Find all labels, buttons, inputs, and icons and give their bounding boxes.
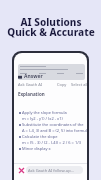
button[interactable]: Answer	[18, 73, 43, 80]
staticText: Copy	[57, 82, 67, 87]
button[interactable]: Ask Gauth AI follow-up...	[26, 166, 83, 174]
staticText: A = (-4, 3) and B = (2, 5) into formula	[22, 128, 87, 133]
staticText: AI Solutions Quick & Accurate	[7, 15, 95, 39]
staticText: Explanation	[18, 91, 45, 97]
staticText: Substitute the coordinates of the points	[22, 122, 87, 127]
staticText: m = (y2 - y1) / (x2 - x1)	[22, 116, 63, 121]
staticText: Ask Gauth AI follow-up...	[28, 168, 74, 173]
staticText: Ask Gauth AI	[18, 82, 43, 87]
button[interactable]: AI assist	[18, 167, 24, 173]
staticText: Select all	[71, 82, 87, 87]
staticText: Calculate the slope	[22, 134, 58, 139]
staticText: Answer	[24, 73, 43, 80]
staticText: Apply the slope formula	[22, 110, 67, 115]
staticText: m = (5 - 3) / (2 - (-4)) = 2 / 6 = 1/3	[22, 140, 81, 145]
staticText: Minor display x	[22, 146, 51, 151]
